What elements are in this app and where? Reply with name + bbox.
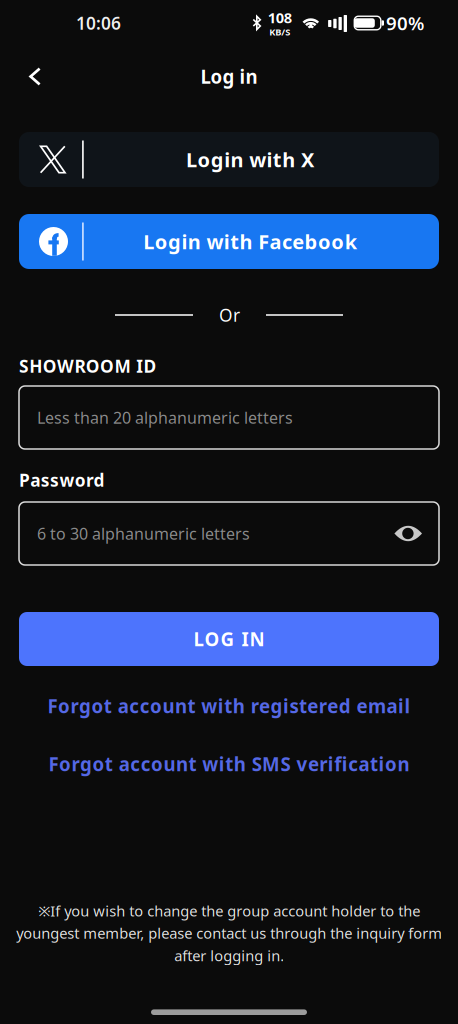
staticText: Login with Facebook [143, 228, 357, 255]
staticText: 6 to 30 alphanumeric letters [37, 523, 250, 544]
staticText: Login with X [186, 146, 314, 173]
staticText: 108 [268, 8, 292, 27]
button[interactable]: Login with X [19, 132, 439, 187]
staticText: LOG IN [193, 627, 264, 651]
staticText: SHOWROOM ID [19, 354, 156, 377]
button[interactable]: Forgot account with SMS verification [0, 753, 458, 775]
button[interactable]: Forgot account with registered email [0, 695, 458, 717]
button[interactable]: LOG IN [19, 612, 439, 666]
staticText: Less than 20 alphanumeric letters [37, 407, 293, 428]
staticText: ※If you wish to change the group account… [16, 901, 442, 965]
staticText: 10:06 [76, 11, 121, 34]
staticText: Forgot account with registered email [48, 694, 410, 718]
staticText: Password [19, 468, 104, 491]
staticText: 90% [386, 11, 424, 35]
staticText: Log in [200, 64, 257, 89]
button[interactable]: Back [13, 55, 57, 97]
staticText: KB/S [269, 26, 290, 38]
staticText: Forgot account with SMS verification [49, 752, 409, 776]
button[interactable]: Login with Facebook [19, 214, 439, 269]
staticText: Or [219, 303, 240, 326]
button[interactable]: Show password [394, 524, 439, 543]
